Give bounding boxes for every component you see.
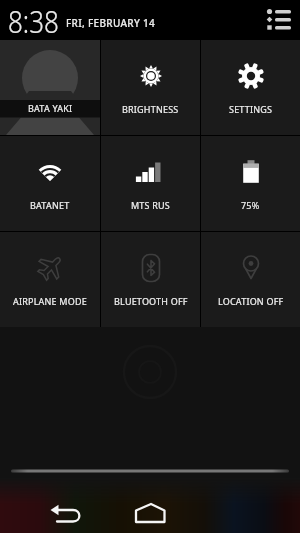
button[interactable]: SETTINGS: [201, 40, 300, 135]
staticText: MTS RUS: [131, 199, 170, 211]
button[interactable]: MTS RUS: [101, 136, 200, 231]
staticText: BATANET: [30, 199, 70, 211]
button[interactable]: [200, 493, 300, 533]
button[interactable]: BATANET: [0, 136, 100, 231]
staticText: BLUETOOTH OFF: [114, 295, 188, 307]
button[interactable]: AIRPLANE MODE: [0, 232, 100, 327]
button[interactable]: [100, 493, 200, 533]
button[interactable]: [266, 5, 292, 31]
button[interactable]: BLUETOOTH OFF: [101, 232, 200, 327]
staticText: BATA YAKI: [28, 102, 73, 114]
button[interactable]: BRIGHTNESS: [101, 40, 200, 135]
staticText: 75%: [241, 199, 260, 211]
staticText: 8:38: [8, 0, 59, 42]
button[interactable]: [0, 493, 100, 533]
button[interactable]: 75%: [201, 136, 300, 231]
button[interactable]: BATA YAKI: [0, 40, 100, 135]
staticText: AIRPLANE MODE: [13, 295, 87, 307]
staticText: LOCATION OFF: [218, 295, 284, 307]
button[interactable]: LOCATION OFF: [201, 232, 300, 327]
staticText: FRI, FEBRUARY 14: [66, 16, 156, 30]
staticText: BRIGHTNESS: [122, 103, 179, 115]
staticText: SETTINGS: [229, 103, 273, 115]
